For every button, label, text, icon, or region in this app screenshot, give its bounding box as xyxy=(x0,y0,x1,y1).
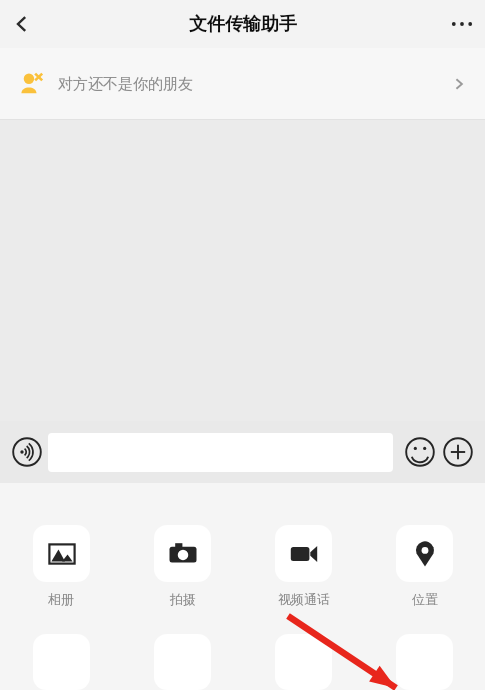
button[interactable]: 相册 xyxy=(0,525,122,607)
button[interactable]: More functions xyxy=(439,433,477,471)
button[interactable] xyxy=(243,634,364,690)
button[interactable]: 对方还不是你的朋友 xyxy=(0,48,485,120)
button[interactable]: Emoji xyxy=(401,433,439,471)
button[interactable]: More options xyxy=(439,1,485,47)
staticText: 文件传输助手 xyxy=(189,13,297,36)
button[interactable] xyxy=(122,634,243,690)
button[interactable] xyxy=(364,634,485,690)
staticText: 相册 xyxy=(48,591,74,607)
staticText: 位置 xyxy=(412,591,438,607)
button[interactable]: 拍摄 xyxy=(122,525,243,607)
staticText: 对方还不是你的朋友 xyxy=(58,75,193,94)
button[interactable]: 视频通话 xyxy=(243,525,364,607)
staticText: 视频通话 xyxy=(278,591,330,607)
button[interactable]: Voice message xyxy=(8,433,46,471)
button[interactable]: Back xyxy=(0,2,44,46)
staticText: 拍摄 xyxy=(170,591,196,607)
button[interactable]: 位置 xyxy=(364,525,485,607)
button[interactable] xyxy=(0,634,122,690)
